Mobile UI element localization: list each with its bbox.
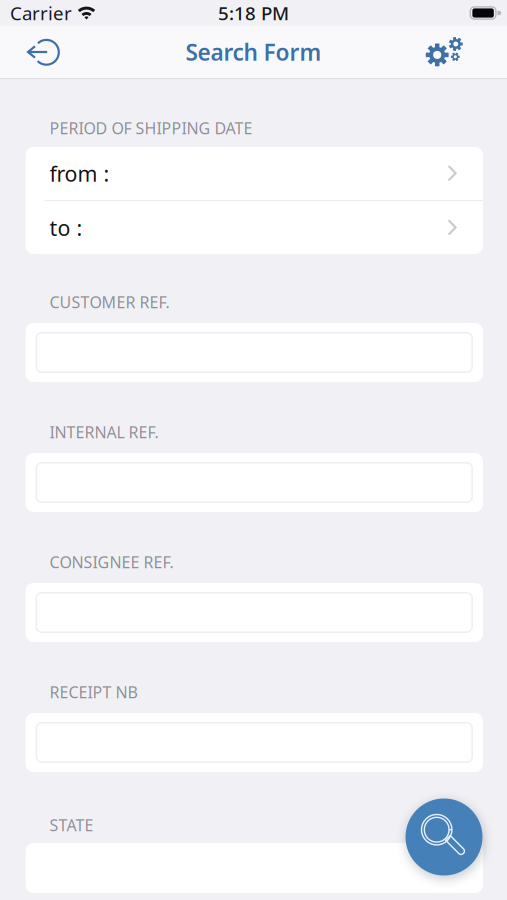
button[interactable]: Settings <box>416 28 472 76</box>
staticText: to : <box>49 213 82 242</box>
staticText: CUSTOMER REF. <box>49 291 169 313</box>
staticText: STATE <box>49 814 93 836</box>
staticText: 5:18 PM <box>218 1 289 25</box>
button[interactable]: from : <box>25 147 483 200</box>
button[interactable]: to : <box>25 201 483 254</box>
staticText: Search Form <box>185 37 321 67</box>
staticText: from : <box>49 159 109 187</box>
staticText: Carrier <box>10 1 72 25</box>
button[interactable]: Search <box>405 798 482 875</box>
button[interactable]: Back <box>15 28 71 76</box>
staticText: INTERNAL REF. <box>49 421 158 443</box>
staticText: CONSIGNEE REF. <box>49 551 173 573</box>
staticText: RECEIPT NB <box>49 681 137 703</box>
staticText: PERIOD OF SHIPPING DATE <box>49 117 252 139</box>
